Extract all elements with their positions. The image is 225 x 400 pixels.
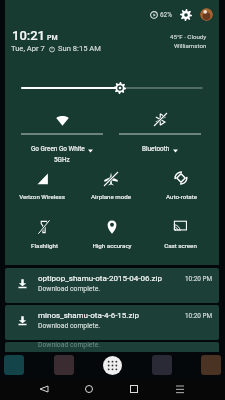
button[interactable]: optipop_shamu-ota-2015-04-06.zip xyxy=(5,268,219,303)
button[interactable]: Cast screen xyxy=(145,216,215,242)
staticText: Verizon Wireless xyxy=(19,193,65,200)
staticText: Bluetooth xyxy=(142,145,170,153)
button[interactable]: Bluetooth xyxy=(110,106,210,168)
staticText: Airplane mode xyxy=(91,193,131,200)
button[interactable]: Settings xyxy=(180,9,192,21)
staticText: 45°F · Cloudy xyxy=(170,33,207,40)
button[interactable]: Brightness xyxy=(5,78,219,98)
button[interactable]: Flashlight xyxy=(9,217,79,243)
button[interactable]: minos_shamu-ota-4-6-15.zip xyxy=(5,305,219,340)
button[interactable]: Menu xyxy=(169,378,191,400)
staticText: minos_shamu-ota-4-6-15.zip xyxy=(38,311,139,320)
staticText: Tue, Apr 7 xyxy=(11,44,45,53)
staticText: 5GHz xyxy=(54,156,70,164)
staticText: Go Green Go White xyxy=(31,145,85,153)
staticText: optipop_shamu-ota-2015-04-06.zip xyxy=(38,274,162,283)
button[interactable]: Download complete. xyxy=(5,342,219,352)
staticText: Flashlight xyxy=(31,242,58,249)
staticText: Auto-rotate xyxy=(166,193,197,200)
button[interactable]: Home xyxy=(78,378,100,400)
staticText: PM xyxy=(47,34,58,42)
staticText: Download complete. xyxy=(38,342,101,349)
button[interactable]: High accuracy xyxy=(77,217,147,243)
button[interactable]: Airplane mode xyxy=(76,169,146,195)
button[interactable]: Auto-rotate xyxy=(146,168,216,194)
staticText: Sun 8:15 AM xyxy=(58,44,101,53)
button[interactable]: Back xyxy=(33,378,55,400)
button[interactable]: Wi-Fi xyxy=(12,106,112,168)
button[interactable]: User profile xyxy=(200,8,213,21)
button[interactable]: Verizon Wireless xyxy=(7,169,77,195)
staticText: Williamston xyxy=(174,42,207,49)
staticText: 10:20 PM xyxy=(185,312,213,320)
staticText: 10:20 PM xyxy=(185,275,213,283)
staticText: Download complete. xyxy=(38,322,101,330)
staticText: 62% xyxy=(160,11,172,19)
staticText: Cast screen xyxy=(164,242,197,249)
staticText: Download complete. xyxy=(38,285,101,293)
staticText: High accuracy xyxy=(92,242,132,249)
staticText: 10:21 xyxy=(12,28,46,43)
button[interactable]: Recents xyxy=(123,378,145,400)
